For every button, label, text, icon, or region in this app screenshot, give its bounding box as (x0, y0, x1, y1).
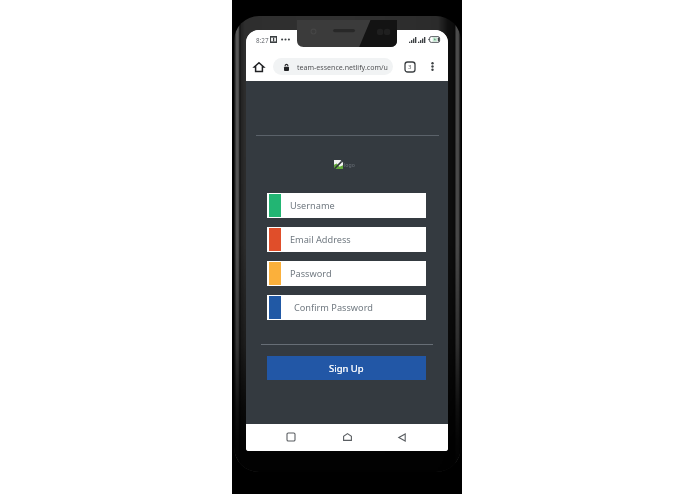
staticText: Password (290, 267, 332, 280)
staticText: 8:27 (256, 36, 269, 45)
button[interactable]: Sign Up (267, 356, 426, 380)
button[interactable]: Password (267, 261, 426, 286)
button[interactable]: Home (250, 58, 268, 76)
staticText: Confirm Password (294, 301, 373, 314)
button[interactable]: More options (423, 57, 441, 75)
button[interactable]: Confirm Password (267, 295, 426, 320)
staticText: 3 (408, 63, 412, 71)
button[interactable]: Home (337, 427, 357, 447)
button[interactable]: team-essence.netlify.com/u (273, 58, 393, 75)
staticText: logo (344, 161, 355, 168)
staticText: Sign Up (329, 362, 364, 375)
button[interactable]: Back (392, 427, 412, 447)
staticText: team-essence.netlify.com/u (297, 62, 388, 72)
staticText: Email Address (290, 233, 351, 246)
button[interactable]: Recent apps (281, 427, 301, 447)
button[interactable]: Username (267, 193, 426, 218)
staticText: Username (290, 199, 335, 212)
button[interactable]: Email Address (267, 227, 426, 252)
button[interactable]: Tabs (400, 57, 419, 76)
